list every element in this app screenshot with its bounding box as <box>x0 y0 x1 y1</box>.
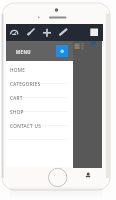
button[interactable]: CART <box>6 91 73 105</box>
staticText: CATEGORIES <box>10 81 41 87</box>
button[interactable]: HOME <box>6 63 73 77</box>
staticText: MENU <box>16 49 32 55</box>
staticText: CART <box>10 95 23 101</box>
staticText: HOME <box>10 67 26 73</box>
staticText: SHOP <box>10 109 24 115</box>
button[interactable]: Close menu <box>56 45 68 57</box>
button[interactable]: CATEGORIES <box>6 77 73 91</box>
button[interactable]: SHOP <box>6 105 73 119</box>
button[interactable]: CONTACT US <box>6 119 73 133</box>
staticText: CONTACT US <box>10 123 42 129</box>
